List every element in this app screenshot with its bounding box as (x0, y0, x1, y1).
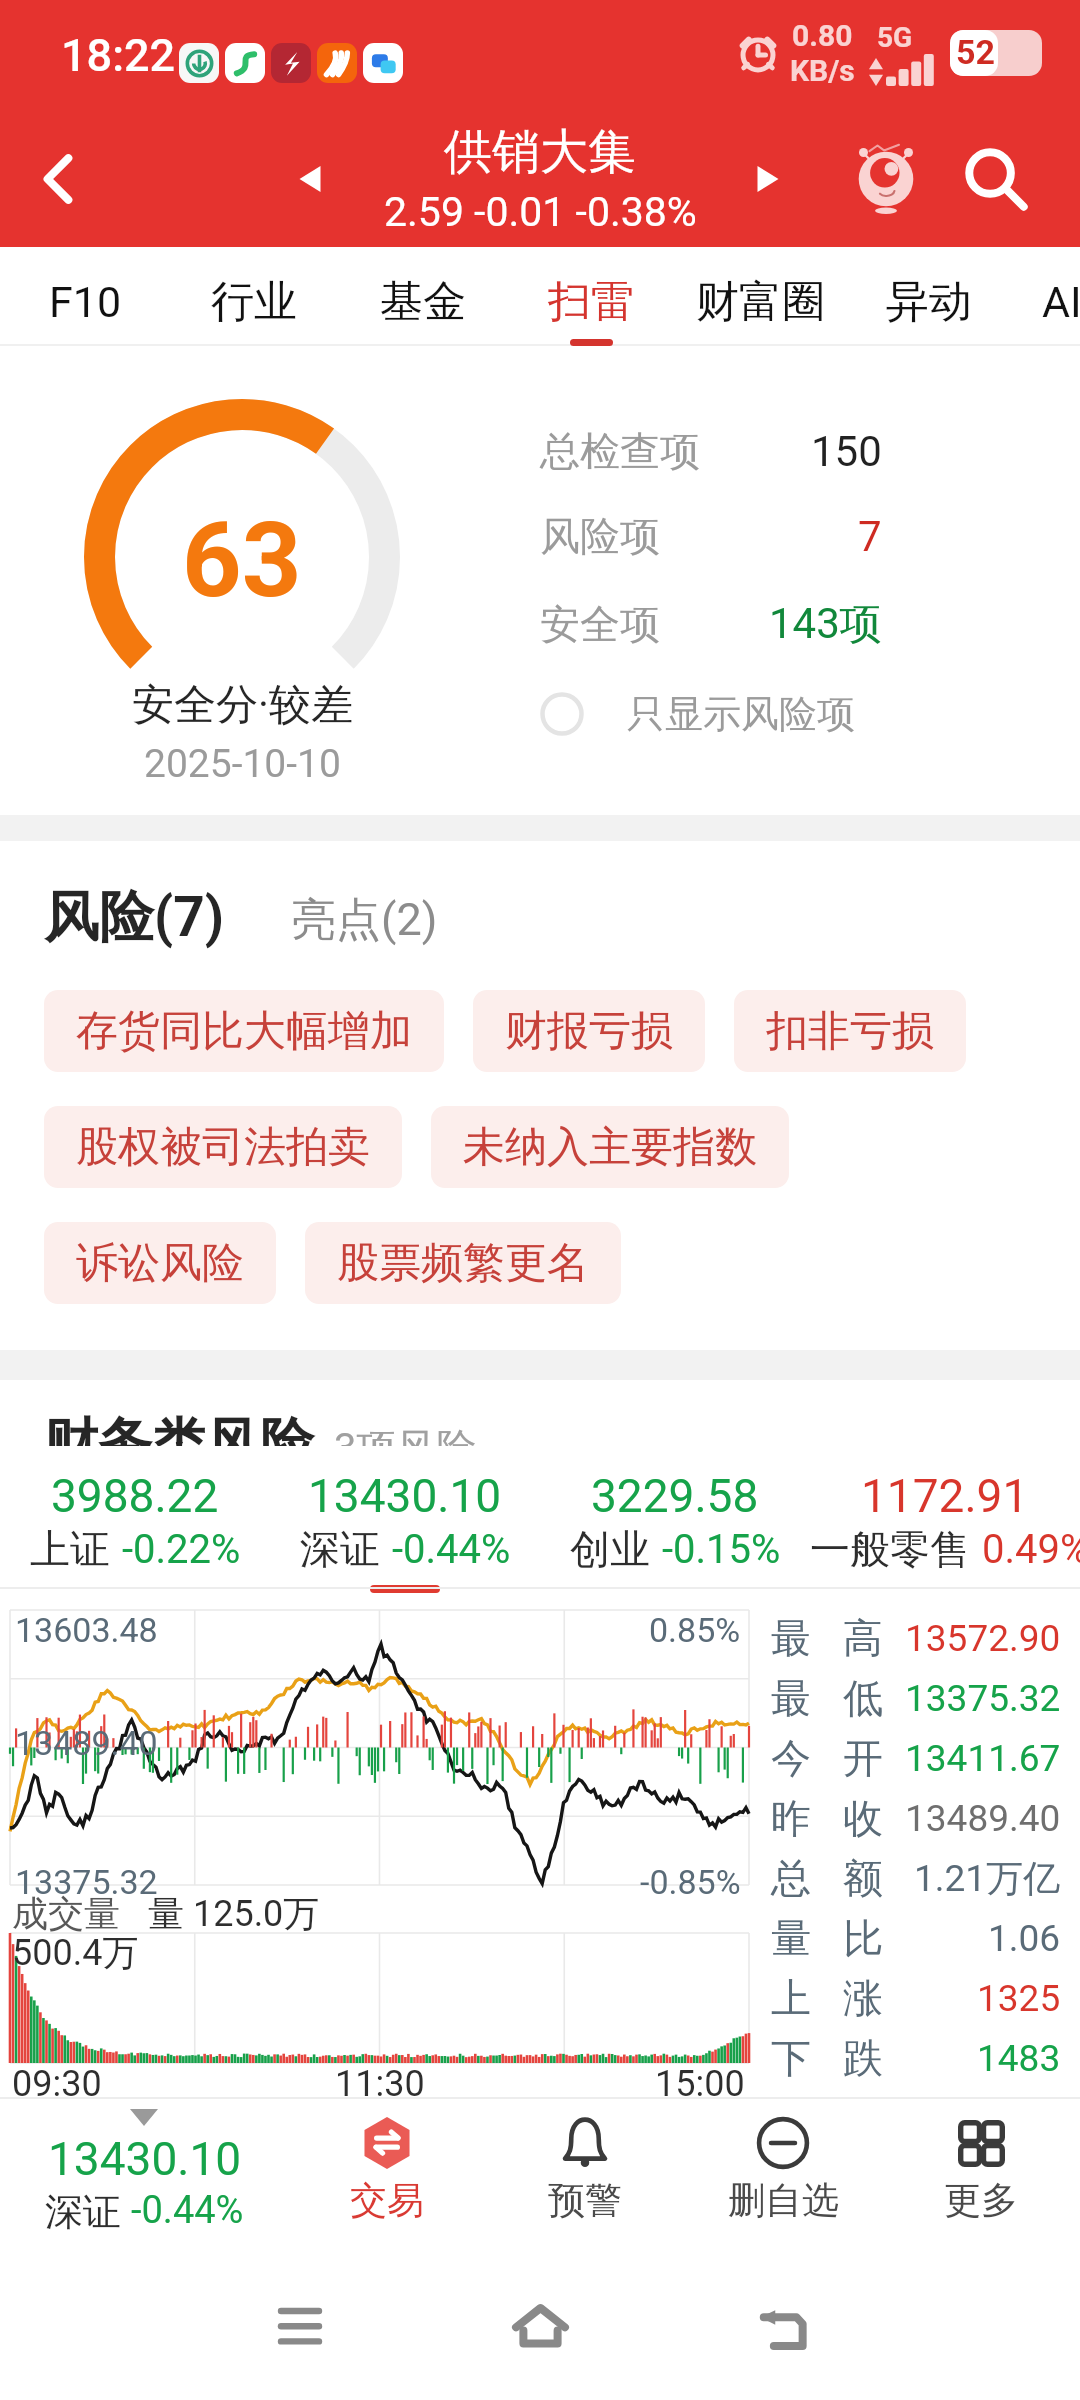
staticText: 财务类风险 (44, 1410, 314, 1478)
staticText: 11:30 (335, 2063, 425, 2105)
staticText: 13489.40 (905, 1797, 1061, 1840)
staticText: 风险(7) (44, 883, 225, 952)
staticText: 低 (843, 1673, 883, 1723)
button[interactable]: Home (450, 2251, 630, 2400)
button[interactable]: 未纳入主要指数 (431, 1106, 789, 1188)
staticText: 13572.90 (905, 1617, 1061, 1660)
staticText: 13430.10 (308, 1469, 502, 1523)
staticText: 成交量 (12, 1891, 120, 1936)
staticText: -0.15% (662, 1526, 781, 1573)
staticText: 扫雷 (548, 275, 634, 329)
staticText: 深证 (300, 1524, 380, 1574)
button[interactable]: AI (980, 247, 1080, 346)
button[interactable]: 扫雷 (509, 247, 673, 346)
staticText: 15:00 (655, 2063, 745, 2105)
staticText: 财富圈 (696, 275, 825, 329)
staticText: 存货同比大幅增加 (76, 1005, 412, 1058)
staticText: 财报亏损 (505, 1005, 673, 1058)
staticText: 总检查项 (540, 426, 700, 476)
button[interactable]: 3988.22 (0, 1446, 270, 1589)
staticText: 1.06 (988, 1917, 1061, 1960)
button[interactable]: 异动 (847, 247, 1011, 346)
button[interactable]: 13430.10 (0, 2097, 288, 2250)
button[interactable]: 1172.91 (810, 1446, 1080, 1589)
button[interactable]: 只显示风险项 (540, 684, 940, 744)
staticText: -0.22% (122, 1526, 241, 1573)
staticText: 1325 (977, 1977, 1061, 2020)
button[interactable]: 预警 (486, 2097, 684, 2250)
button[interactable]: 行业 (172, 247, 336, 346)
button[interactable]: Back (9, 129, 109, 229)
button[interactable]: 存货同比大幅增加 (44, 990, 444, 1072)
button[interactable]: 诉讼风险 (44, 1222, 276, 1304)
staticText: AI (1042, 277, 1080, 327)
staticText: 一般零售 (810, 1524, 970, 1574)
staticText: 0.49% (982, 1526, 1080, 1573)
button[interactable]: 财富圈 (654, 247, 866, 346)
staticText: -0.85% (640, 1862, 741, 1902)
staticText: 2.59 -0.01 -0.38% (384, 188, 697, 236)
staticText: 09:30 (12, 2063, 102, 2105)
staticText: 3988.22 (51, 1469, 219, 1523)
staticText: 行业 (211, 275, 297, 329)
button[interactable]: 亮点(2) (291, 895, 438, 952)
staticText: 13411.67 (905, 1737, 1061, 1780)
staticText: 上证 (30, 1524, 110, 1574)
button[interactable]: AI assistant (831, 124, 941, 234)
staticText: 量 (771, 1913, 811, 1963)
staticText: 扣非亏损 (766, 1005, 934, 1058)
staticText: 股权被司法拍卖 (76, 1121, 370, 1174)
staticText: KB/s (790, 53, 855, 88)
button[interactable]: 更多 (882, 2097, 1080, 2250)
staticText: 0.80 (792, 18, 853, 53)
staticText: 风险项 (540, 511, 660, 561)
staticText: 更多 (944, 2177, 1018, 2224)
staticText: 143项 (769, 598, 882, 651)
staticText: 深证 (45, 2188, 121, 2236)
staticText: 5G (877, 21, 913, 54)
staticText: 涨 (843, 1973, 883, 2023)
button[interactable]: Search (941, 124, 1051, 234)
button[interactable]: Back (692, 2251, 872, 2400)
staticText: 收 (843, 1793, 883, 1843)
button[interactable]: 股票频繁更名 (305, 1222, 621, 1304)
staticText: 7 (858, 512, 882, 561)
staticText: 额 (843, 1853, 883, 1903)
staticText: 未纳入主要指数 (463, 1121, 757, 1174)
button[interactable]: Recent apps (210, 2251, 390, 2400)
button[interactable]: Next stock (738, 110, 798, 247)
staticText: 最 (771, 1673, 811, 1723)
button[interactable]: 3229.58 (540, 1446, 810, 1589)
staticText: 52 (956, 32, 996, 72)
staticText: 1483 (977, 2037, 1061, 2080)
staticText: 13430.10 (48, 2132, 242, 2186)
button[interactable]: 13430.10 (270, 1446, 540, 1589)
staticText: F10 (49, 277, 122, 327)
staticText: 诉讼风险 (76, 1237, 244, 1290)
staticText: 删自选 (728, 2177, 839, 2224)
button[interactable]: 基金 (341, 247, 505, 346)
staticText: 基金 (380, 275, 466, 329)
staticText: 今 (771, 1733, 811, 1783)
staticText: 13375.32 (15, 1862, 158, 1902)
button[interactable]: 风险(7) (44, 883, 225, 952)
button[interactable]: Previous stock (280, 110, 340, 247)
button[interactable]: 股权被司法拍卖 (44, 1106, 402, 1188)
staticText: 比 (843, 1913, 883, 1963)
button[interactable]: 扣非亏损 (734, 990, 966, 1072)
staticText: 异动 (886, 275, 972, 329)
staticText: 交易 (350, 2177, 424, 2224)
button[interactable]: 交易 (288, 2097, 486, 2250)
button[interactable]: 删自选 (684, 2097, 882, 2250)
staticText: 18:22 (61, 29, 176, 82)
staticText: 13375.32 (905, 1677, 1061, 1720)
button[interactable]: 财报亏损 (473, 990, 705, 1072)
staticText: 下 (771, 2033, 811, 2083)
staticText: 3229.58 (591, 1469, 759, 1523)
staticText: 2025-10-10 (144, 741, 341, 787)
staticText: 500.4万 (12, 1930, 139, 1975)
staticText: 预警 (548, 2177, 622, 2224)
staticText: 高 (843, 1613, 883, 1663)
button[interactable]: F10 (0, 247, 191, 346)
staticText: 安全项 (540, 599, 660, 649)
